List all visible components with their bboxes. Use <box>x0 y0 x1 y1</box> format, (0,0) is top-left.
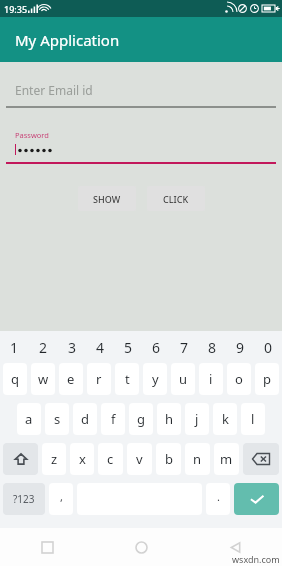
button[interactable]: 1 <box>0 335 29 359</box>
staticText: Password <box>15 130 49 140</box>
button[interactable]: q <box>3 363 27 395</box>
staticText: s <box>54 410 61 428</box>
button[interactable]: m <box>214 443 239 475</box>
staticText: 8 <box>208 338 217 357</box>
staticText: 7 <box>180 338 189 357</box>
button[interactable]: y <box>143 363 167 395</box>
staticText: My Application <box>15 30 120 50</box>
staticText: 5 <box>124 338 133 357</box>
staticText: CLICK <box>163 193 189 205</box>
button[interactable]: e <box>59 363 83 395</box>
staticText: z <box>51 450 58 468</box>
staticText: 0 <box>264 338 273 357</box>
button[interactable]: l <box>241 403 265 435</box>
staticText: p <box>263 370 271 388</box>
button[interactable]: 8 <box>198 335 226 359</box>
staticText: x <box>79 450 86 468</box>
button[interactable]: c <box>98 443 123 475</box>
button[interactable]: , <box>49 483 73 515</box>
staticText: e <box>67 370 75 388</box>
button[interactable]: h <box>157 403 181 435</box>
button[interactable]: z <box>42 443 66 475</box>
button[interactable]: Shift <box>3 443 38 475</box>
button[interactable]: k <box>213 403 237 435</box>
button[interactable]: 5 <box>114 335 142 359</box>
button[interactable]: v <box>127 443 152 475</box>
staticText: j <box>195 410 199 428</box>
staticText: 6 <box>152 338 161 357</box>
button[interactable]: Enter Email id <box>0 82 282 108</box>
button[interactable]: b <box>156 443 181 475</box>
button[interactable]: f <box>101 403 125 435</box>
button[interactable]: 3 <box>58 335 86 359</box>
staticText: 19:35 <box>4 3 28 15</box>
button[interactable]: 9 <box>226 335 254 359</box>
button[interactable]: Password <box>0 130 282 164</box>
button[interactable]: w <box>31 363 55 395</box>
staticText: SHOW <box>93 193 121 205</box>
button[interactable]: 2 <box>29 335 58 359</box>
button[interactable]: 7 <box>170 335 198 359</box>
staticText: 3 <box>68 338 77 357</box>
staticText: u <box>179 370 188 388</box>
button[interactable]: . <box>206 483 230 515</box>
staticText: k <box>222 410 229 428</box>
staticText: t <box>125 370 130 388</box>
staticText: v <box>136 450 143 468</box>
staticText: q <box>11 370 19 388</box>
button[interactable]: Enter <box>234 483 279 515</box>
button[interactable]: ?123 <box>3 483 45 515</box>
button[interactable]: 6 <box>142 335 170 359</box>
staticText: c <box>107 450 114 468</box>
staticText: a <box>25 410 33 428</box>
button[interactable]: Back <box>188 528 282 566</box>
staticText: d <box>81 410 89 428</box>
staticText: , <box>60 489 63 504</box>
button[interactable]: CLICK <box>147 186 205 211</box>
staticText: h <box>165 410 174 428</box>
staticText: y <box>152 370 159 388</box>
staticText: o <box>235 370 243 388</box>
button[interactable]: d <box>73 403 97 435</box>
staticText: Enter Email id <box>15 82 93 98</box>
staticText: r <box>96 370 102 388</box>
button[interactable]: 0 <box>254 335 282 359</box>
button[interactable]: s <box>45 403 69 435</box>
button[interactable]: n <box>185 443 210 475</box>
button[interactable]: a <box>17 403 41 435</box>
staticText: g <box>137 410 145 428</box>
staticText: 9 <box>236 338 245 357</box>
button[interactable]: 4 <box>86 335 114 359</box>
button[interactable]: j <box>185 403 209 435</box>
button[interactable]: g <box>129 403 153 435</box>
staticText: m <box>220 450 233 468</box>
button[interactable]: o <box>227 363 251 395</box>
staticText: 4 <box>96 338 105 357</box>
button[interactable]: r <box>87 363 111 395</box>
staticText: wsxdn.com <box>232 553 280 565</box>
button[interactable]: i <box>199 363 223 395</box>
staticText: n <box>193 450 202 468</box>
staticText: ?123 <box>13 492 35 506</box>
staticText: f <box>111 410 116 428</box>
button[interactable]: Home <box>94 528 188 566</box>
button[interactable]: p <box>255 363 279 395</box>
staticText: b <box>165 450 173 468</box>
staticText: l <box>251 410 255 428</box>
button[interactable]: Recents <box>0 528 94 566</box>
staticText: 1 <box>10 338 19 357</box>
button[interactable]: Backspace <box>243 443 279 475</box>
button[interactable]: u <box>171 363 195 395</box>
button[interactable]: x <box>70 443 94 475</box>
staticText: 2 <box>39 338 48 357</box>
button[interactable]: t <box>115 363 139 395</box>
staticText: i <box>209 370 213 388</box>
staticText: . <box>217 489 220 504</box>
staticText: w <box>38 370 49 388</box>
button[interactable]: SHOW <box>78 186 136 211</box>
